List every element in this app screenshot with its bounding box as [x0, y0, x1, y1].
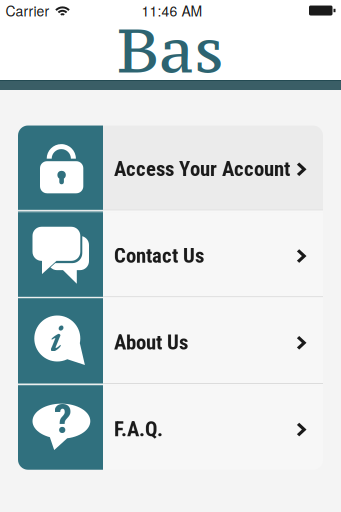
- button[interactable]: ?: [18, 386, 323, 470]
- button[interactable]: Access Your Account: [18, 125, 323, 209]
- staticText: Bas: [117, 9, 224, 90]
- staticText: i: [50, 310, 63, 362]
- button[interactable]: i: [18, 299, 323, 383]
- staticText: Access Your Account: [114, 157, 290, 181]
- staticText: Carrier: [5, 0, 49, 20]
- button[interactable]: Contact Us: [18, 212, 323, 296]
- staticText: About Us: [114, 330, 188, 355]
- staticText: F.A.Q.: [114, 417, 163, 441]
- staticText: 11:46 AM: [141, 0, 202, 20]
- staticText: ?: [53, 394, 71, 443]
- staticText: Contact Us: [114, 244, 204, 268]
